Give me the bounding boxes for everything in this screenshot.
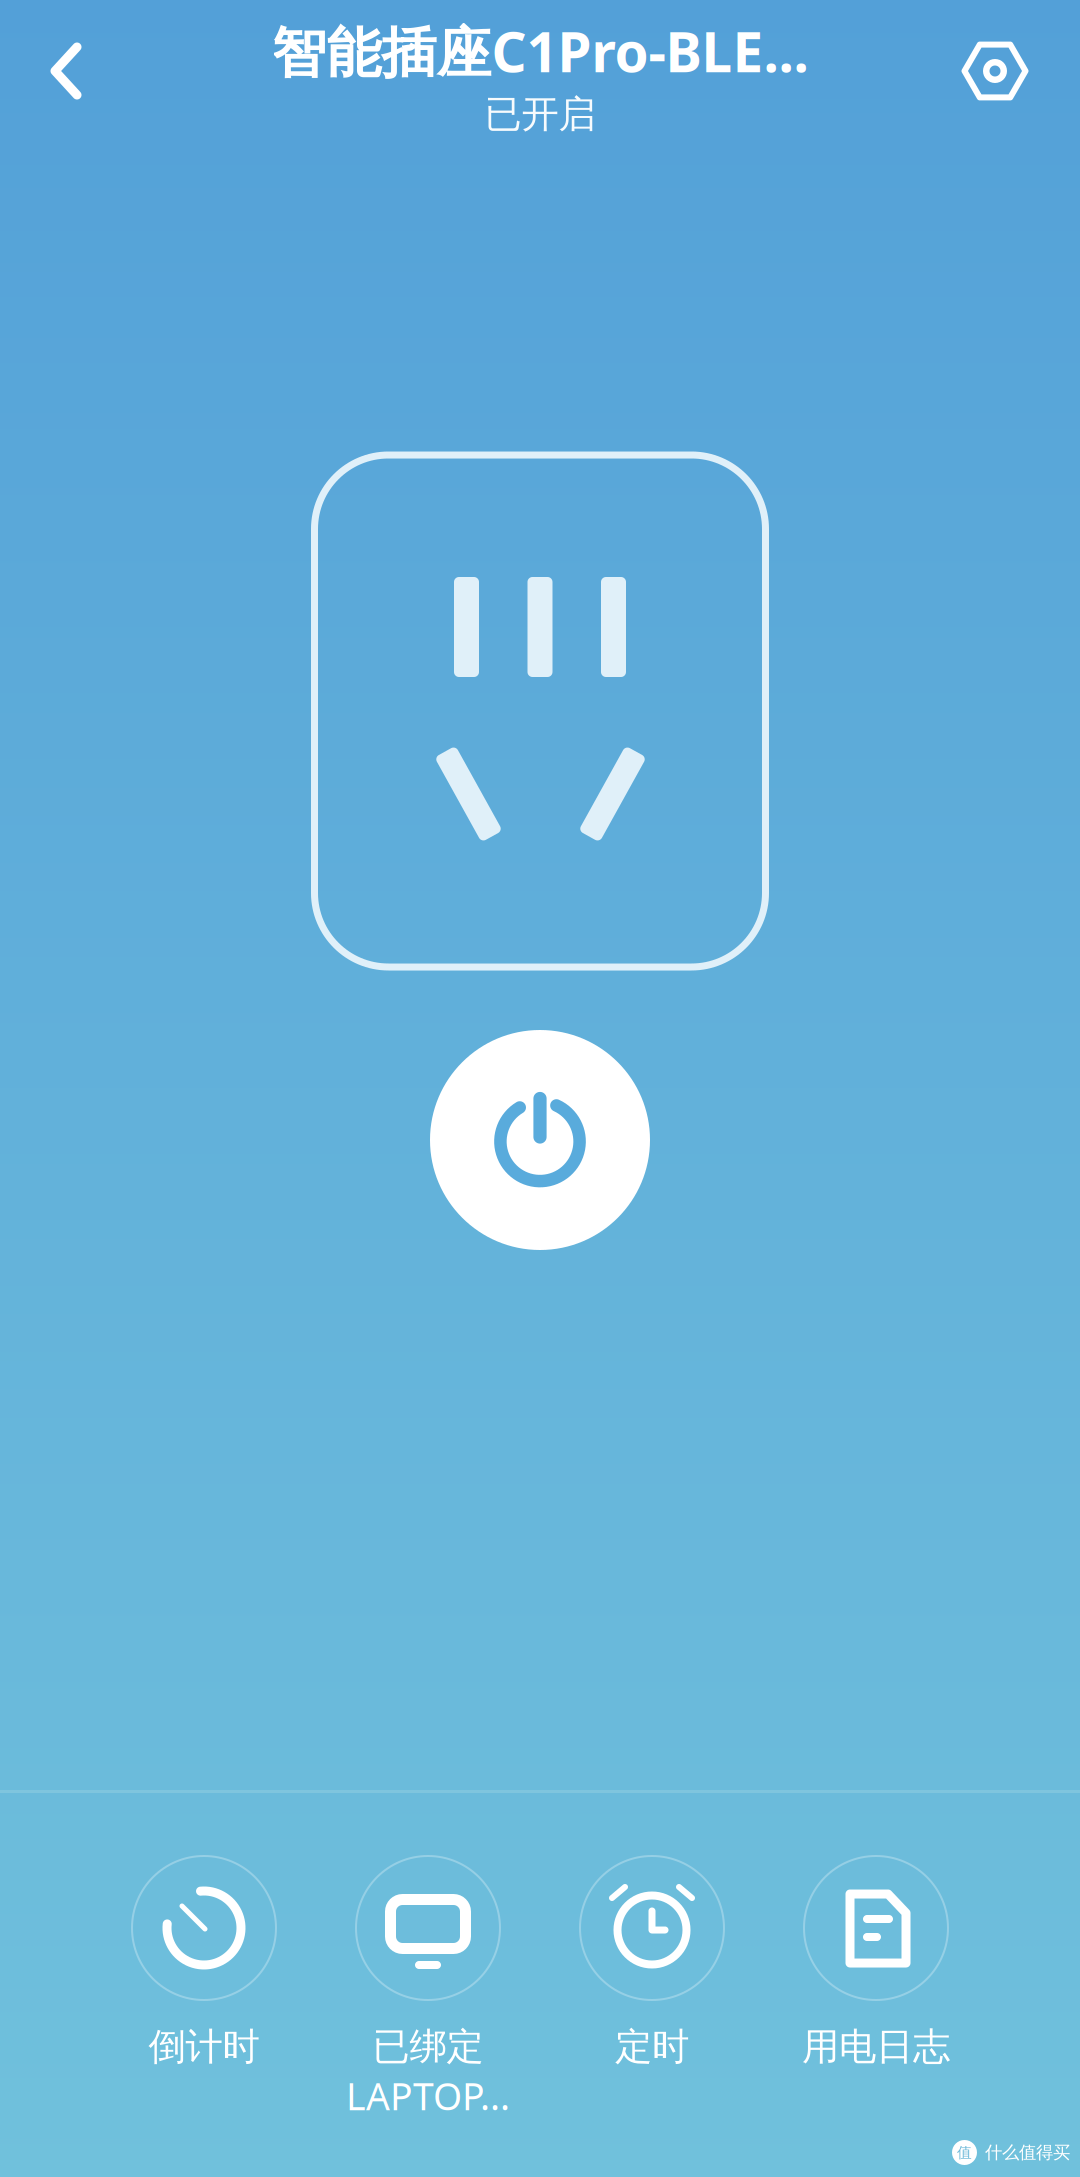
- button[interactable]: Power: [430, 1030, 650, 1250]
- staticText: 已绑定: [372, 2024, 483, 2070]
- staticText: 智能插座C1Pro-BLE...: [271, 15, 808, 87]
- button[interactable]: 定时: [540, 1856, 764, 2126]
- staticText: 已开启: [484, 91, 595, 137]
- staticText: LAPTOP...: [346, 2071, 510, 2120]
- staticText: 什么值得买: [985, 2142, 1070, 2163]
- button[interactable]: 已绑定: [316, 1856, 540, 2126]
- staticText: 定时: [615, 2024, 689, 2070]
- button[interactable]: 用电日志: [764, 1856, 988, 2126]
- staticText: 值: [957, 2143, 972, 2161]
- button[interactable]: Back: [6, 11, 126, 131]
- button[interactable]: Settings: [935, 11, 1055, 131]
- staticText: 倒计时: [148, 2024, 259, 2070]
- button[interactable]: 倒计时: [92, 1856, 316, 2126]
- staticText: 用电日志: [802, 2024, 950, 2070]
